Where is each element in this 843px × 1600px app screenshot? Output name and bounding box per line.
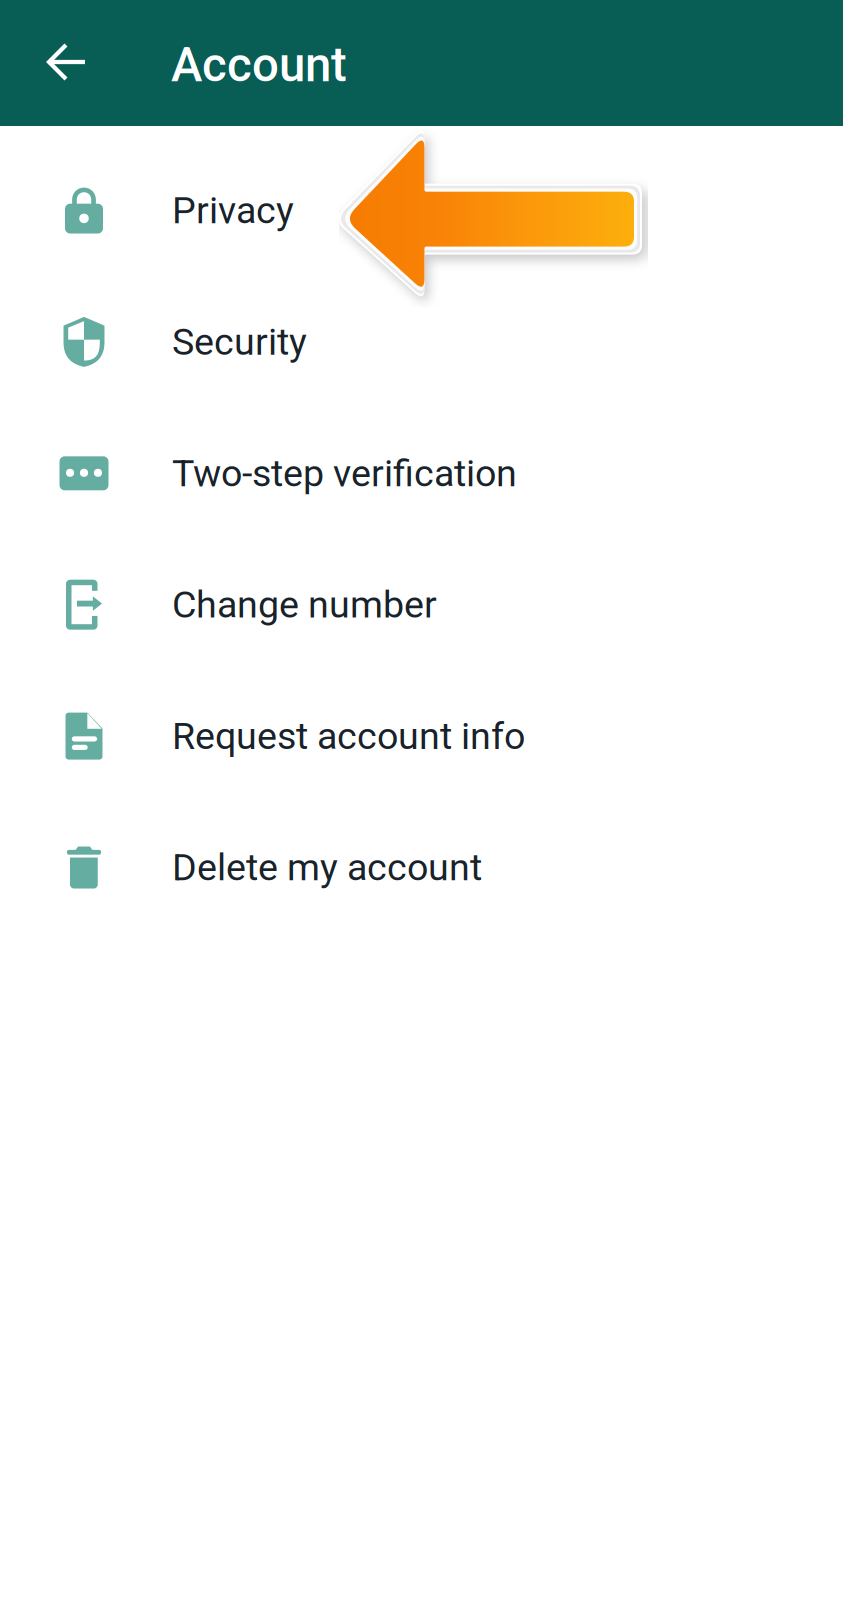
staticText: Two-step verification [172, 451, 517, 495]
button[interactable]: Change number [0, 539, 843, 670]
staticText: Security [172, 320, 307, 364]
staticText: Privacy [172, 188, 294, 233]
button[interactable]: Back [0, 0, 131, 126]
staticText: Request account info [172, 714, 525, 758]
staticText: Account [171, 37, 347, 93]
button[interactable]: Privacy [0, 145, 843, 276]
button[interactable]: Delete my account [0, 802, 843, 933]
button[interactable]: Security [0, 276, 843, 408]
button[interactable]: Request account info [0, 670, 843, 802]
staticText: Change number [172, 583, 437, 627]
button[interactable]: Two-step verification [0, 408, 843, 539]
staticText: Delete my account [172, 845, 482, 890]
